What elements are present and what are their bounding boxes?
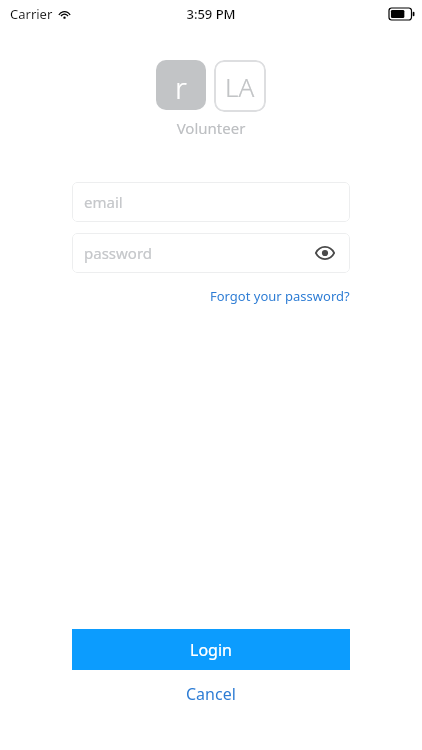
staticText: LA: [225, 69, 255, 104]
staticText: r: [175, 67, 187, 108]
button[interactable]: email: [72, 182, 350, 222]
staticText: Carrier: [10, 5, 53, 23]
staticText: password: [84, 243, 152, 263]
staticText: email: [84, 192, 123, 212]
button[interactable]: Show password: [312, 240, 338, 266]
staticText: Login: [190, 639, 232, 661]
staticText: Forgot your password?: [210, 287, 350, 305]
button[interactable]: Forgot your password?: [210, 285, 350, 307]
button[interactable]: Cancel: [170, 679, 252, 709]
staticText: Cancel: [186, 683, 236, 705]
staticText: 3:59 PM: [0, 5, 422, 23]
button[interactable]: Login: [72, 629, 350, 670]
staticText: Volunteer: [0, 118, 422, 138]
button[interactable]: password: [72, 233, 350, 273]
